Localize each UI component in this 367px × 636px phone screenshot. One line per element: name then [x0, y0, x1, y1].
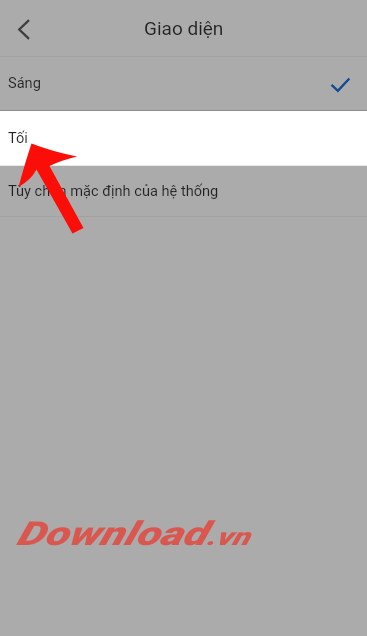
button[interactable]: Tùy chọn mặc định của hệ thống — [0, 166, 367, 216]
staticText: Sáng — [8, 74, 41, 91]
button[interactable]: Back — [0, 6, 44, 50]
staticText: .vn — [206, 523, 250, 551]
button[interactable]: Tối — [0, 111, 367, 165]
button[interactable]: Sáng — [0, 57, 367, 110]
staticText: Giao diện — [144, 17, 224, 39]
staticText: Tối — [8, 129, 28, 146]
staticText: Tùy chọn mặc định của hệ thống — [8, 182, 219, 199]
staticText: Download — [16, 514, 206, 553]
